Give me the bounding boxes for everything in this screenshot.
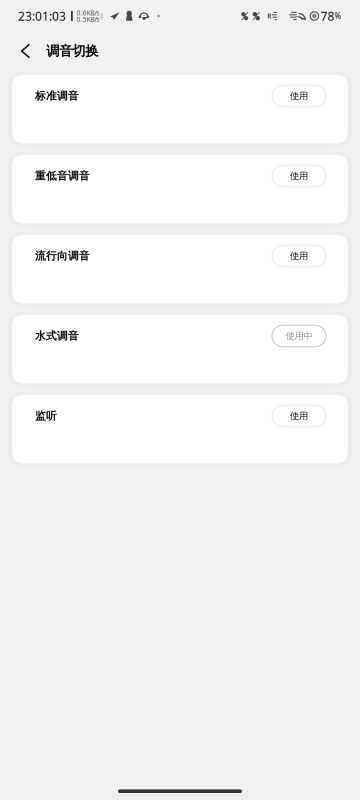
staticText: 调音切换	[46, 43, 98, 59]
button[interactable]: 流行向调音	[12, 234, 348, 303]
button[interactable]: 重低音调音	[12, 154, 348, 223]
staticText: 78	[321, 8, 335, 24]
staticText: 重低音调音	[35, 169, 90, 182]
staticText: 使用中	[285, 330, 312, 342]
staticText: 使用	[290, 170, 308, 182]
button[interactable]: Back	[11, 35, 39, 67]
staticText: 监听	[35, 409, 57, 422]
staticText: R	[267, 12, 271, 20]
staticText: 使用	[290, 410, 308, 422]
staticText: 流行向调音	[35, 249, 90, 262]
staticText: 使用	[290, 250, 308, 262]
staticText: 使用	[290, 90, 308, 102]
staticText: 0.5KB/s	[76, 15, 99, 24]
button[interactable]: 标准调音	[12, 74, 348, 143]
button[interactable]: 监听	[12, 394, 348, 463]
button[interactable]: 水式调音	[12, 314, 348, 383]
staticText: 23:01:03	[18, 8, 66, 24]
staticText: 标准调音	[35, 89, 79, 102]
staticText: 水式调音	[35, 329, 79, 342]
staticText: 0.6KB/s	[76, 8, 99, 17]
staticText: %	[335, 11, 342, 21]
